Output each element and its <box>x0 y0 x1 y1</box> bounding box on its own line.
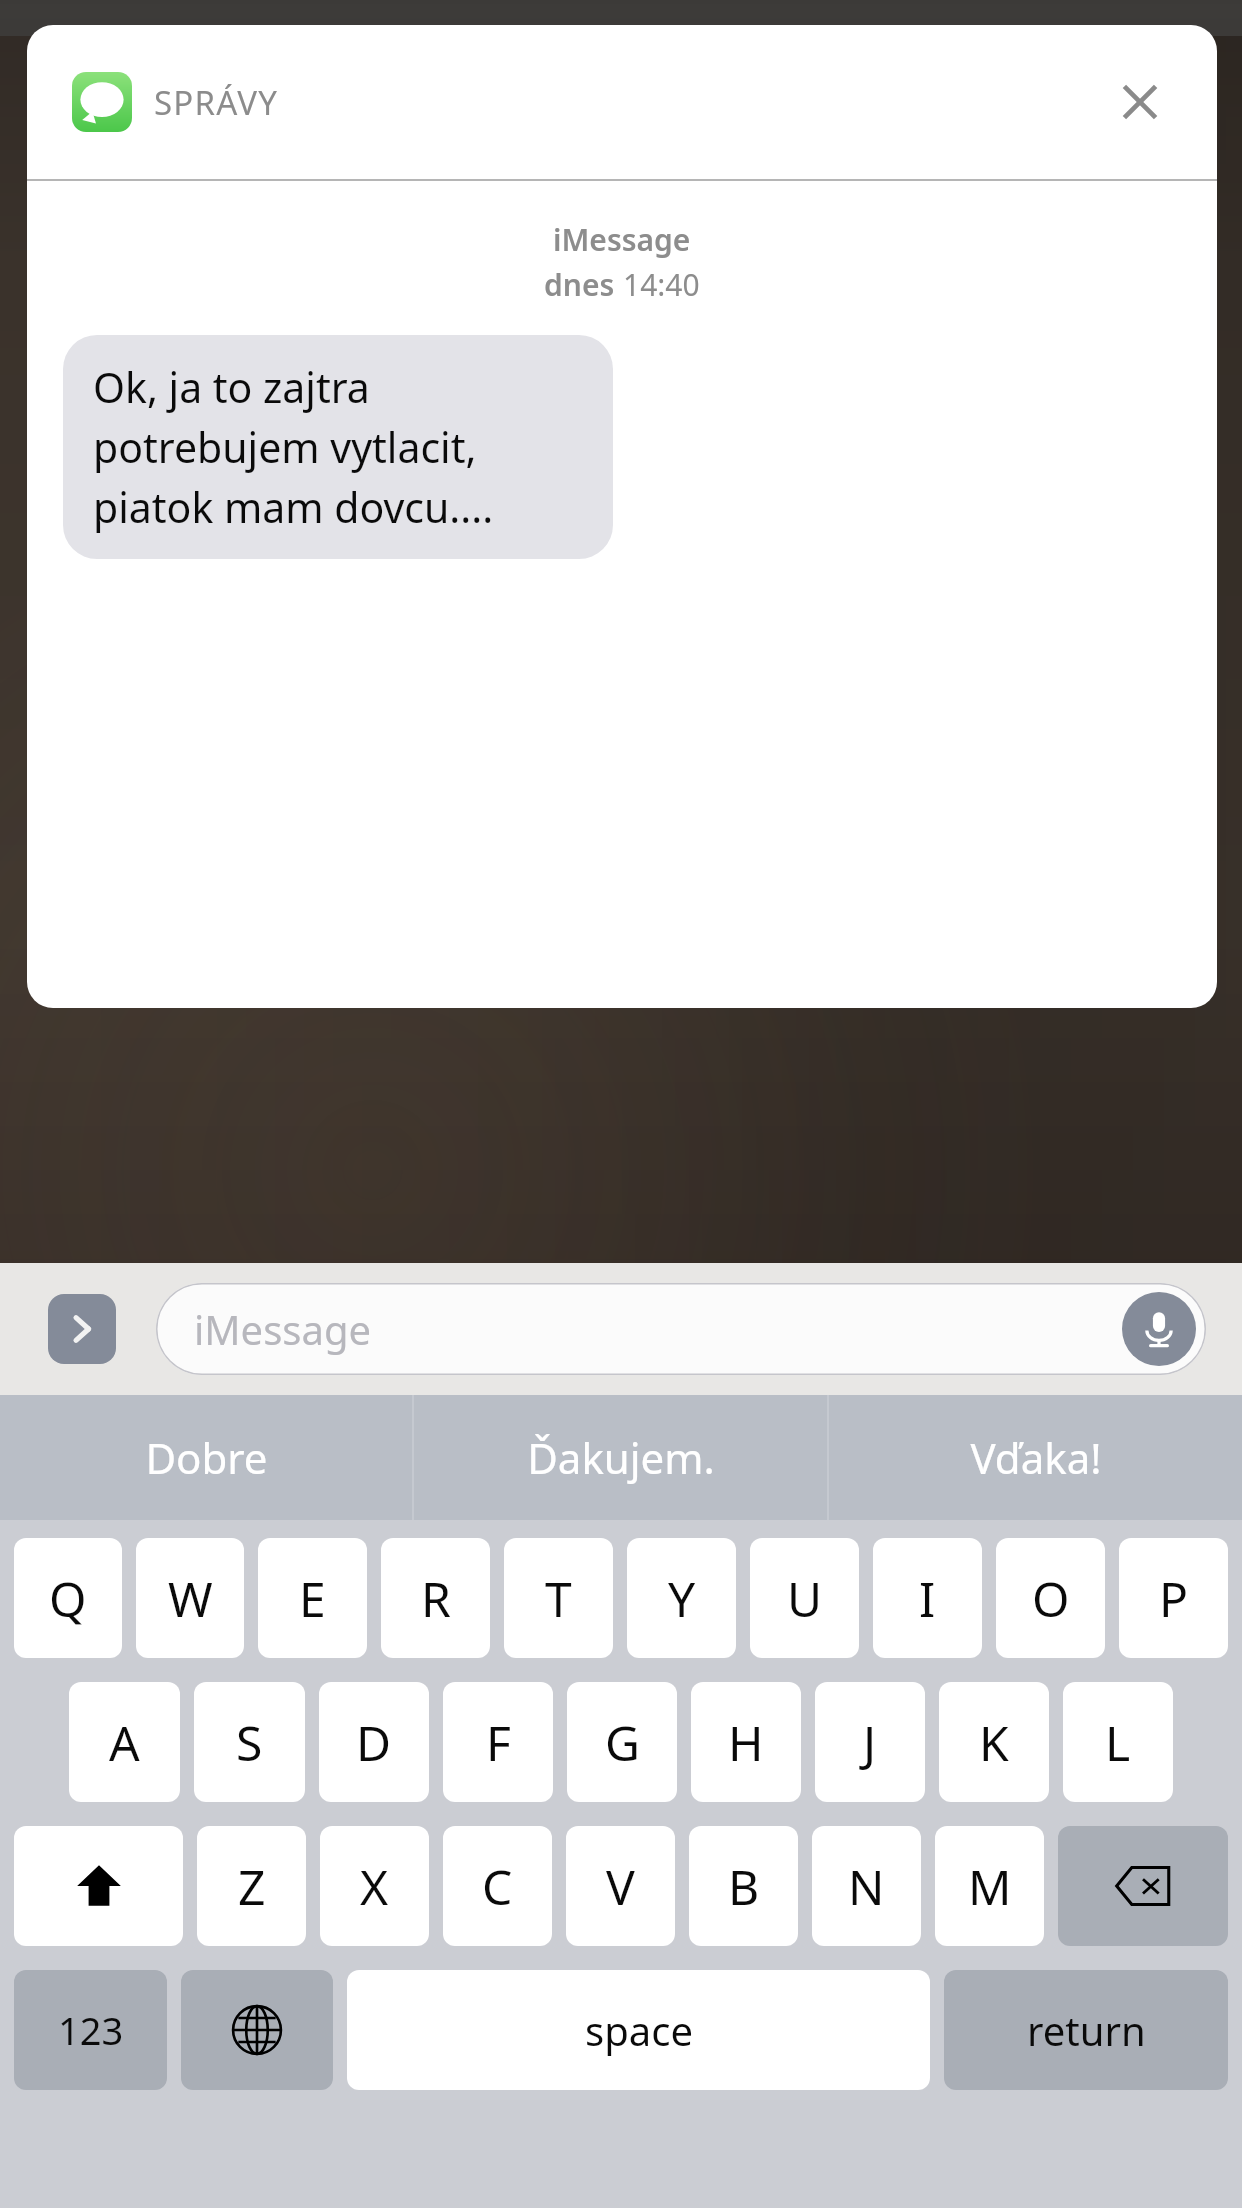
button[interactable]: N <box>812 1826 921 1946</box>
button[interactable]: C <box>443 1826 552 1946</box>
staticText: E <box>299 1566 326 1631</box>
button[interactable]: Z <box>197 1826 306 1946</box>
button[interactable]: D <box>319 1682 429 1802</box>
staticText: return <box>1027 2003 1146 2057</box>
staticText: T <box>545 1566 572 1631</box>
button[interactable]: Vďaka! <box>829 1395 1242 1520</box>
button[interactable]: T <box>504 1538 613 1658</box>
staticText: H <box>728 1710 764 1775</box>
staticText: Ďakujem. <box>527 1429 715 1486</box>
staticText: X <box>360 1854 389 1919</box>
button[interactable]: Backspace <box>1058 1826 1228 1946</box>
button[interactable]: F <box>443 1682 553 1802</box>
button[interactable]: I <box>873 1538 982 1658</box>
staticText: N <box>848 1854 885 1919</box>
staticText: dnes <box>544 264 623 305</box>
staticText: B <box>728 1854 760 1919</box>
staticText: W <box>168 1566 213 1631</box>
staticText: K <box>979 1710 1009 1775</box>
staticText: space <box>585 2003 693 2057</box>
staticText: U <box>787 1566 823 1631</box>
staticText: 123 <box>58 2004 124 2056</box>
button[interactable]: Dictation <box>1122 1292 1196 1366</box>
button[interactable]: G <box>567 1682 677 1802</box>
button[interactable]: iMessage <box>156 1283 1206 1375</box>
button[interactable]: Close <box>1103 65 1177 139</box>
staticText: S <box>236 1710 263 1775</box>
button[interactable]: U <box>750 1538 859 1658</box>
button[interactable]: Dobre <box>0 1395 412 1520</box>
staticText: Vďaka! <box>970 1429 1102 1486</box>
button[interactable]: Q <box>14 1538 122 1658</box>
button[interactable]: M <box>935 1826 1044 1946</box>
staticText: O <box>1032 1566 1070 1631</box>
button[interactable]: H <box>691 1682 801 1802</box>
button[interactable]: App drawer <box>48 1294 116 1364</box>
staticText: Q <box>49 1566 87 1631</box>
button[interactable]: W <box>136 1538 244 1658</box>
button[interactable]: P <box>1119 1538 1228 1658</box>
staticText: P <box>1159 1566 1189 1631</box>
button[interactable]: L <box>1063 1682 1173 1802</box>
button[interactable]: Ok, ja to zajtra potrebujem vytlacit, pi… <box>63 335 613 559</box>
button[interactable]: B <box>689 1826 798 1946</box>
staticText: C <box>482 1854 513 1919</box>
staticText: G <box>605 1710 640 1775</box>
button[interactable]: X <box>320 1826 429 1946</box>
button[interactable]: return <box>944 1970 1228 2090</box>
staticText: A <box>109 1710 140 1775</box>
button[interactable]: J <box>815 1682 925 1802</box>
staticText: I <box>919 1566 936 1631</box>
staticText: iMessage <box>553 219 691 260</box>
button[interactable]: R <box>381 1538 490 1658</box>
staticText: SPRÁVY <box>154 80 279 125</box>
button[interactable]: S <box>194 1682 305 1802</box>
staticText: Ok, ja to zajtra potrebujem vytlacit, pi… <box>93 359 583 535</box>
button[interactable]: 123 <box>14 1970 167 2090</box>
staticText: M <box>968 1854 1012 1919</box>
button[interactable]: Y <box>627 1538 736 1658</box>
staticText: Y <box>668 1566 696 1631</box>
button[interactable]: K <box>939 1682 1049 1802</box>
staticText: 14:40 <box>623 264 700 305</box>
button[interactable]: A <box>69 1682 180 1802</box>
button[interactable]: O <box>996 1538 1105 1658</box>
staticText: Z <box>238 1854 266 1919</box>
staticText: D <box>356 1710 392 1775</box>
staticText: J <box>863 1710 877 1775</box>
button[interactable]: Switch keyboard <box>181 1970 333 2090</box>
button[interactable]: E <box>258 1538 367 1658</box>
staticText: V <box>606 1854 635 1919</box>
button[interactable]: Ďakujem. <box>414 1395 827 1520</box>
button[interactable]: Shift <box>14 1826 183 1946</box>
staticText: Dobre <box>145 1429 268 1486</box>
staticText: F <box>486 1710 511 1775</box>
button[interactable]: V <box>566 1826 675 1946</box>
staticText: L <box>1105 1710 1131 1775</box>
staticText: R <box>421 1566 451 1631</box>
button[interactable]: space <box>347 1970 930 2090</box>
staticText: iMessage <box>194 1302 372 1356</box>
